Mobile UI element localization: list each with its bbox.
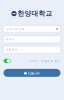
staticText: 비밀번호 [6, 48, 18, 51]
button[interactable]: 소속기관 선택 [3, 26, 60, 33]
button[interactable]: 비밀번호 [3, 46, 60, 53]
staticText: 아이디 · 비밀번호 찾기 [29, 59, 60, 63]
staticText: 아이디 [6, 38, 15, 41]
button[interactable]: Log-in [3, 69, 60, 77]
staticText: 소속기관 선택 [6, 28, 25, 31]
button[interactable]: Remember ID [3, 59, 11, 63]
staticText: Log-in [28, 70, 40, 75]
button[interactable]: 아이디 [3, 36, 60, 43]
staticText: 한양대학교 [18, 9, 53, 18]
button[interactable]: 아이디 · 비밀번호 찾기 [29, 59, 60, 63]
